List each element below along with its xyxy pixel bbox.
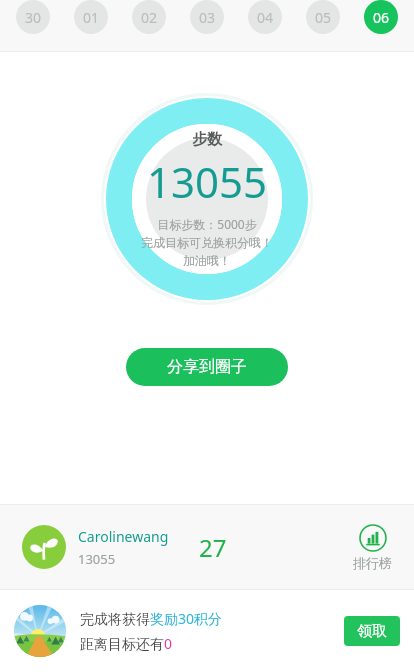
staticText: 分享到圈子 xyxy=(167,357,247,377)
other: 排行榜 xyxy=(359,524,387,552)
staticText: 目标步数：5000步 xyxy=(157,216,257,232)
staticText: 距离目标还有0 xyxy=(80,634,173,653)
staticText: 03 xyxy=(199,8,216,27)
staticText: 领取 xyxy=(357,622,387,641)
staticText: 30 xyxy=(25,8,42,27)
staticText: 完成将获得奖励30积分 xyxy=(80,609,223,628)
button[interactable]: 领取 xyxy=(344,616,400,646)
staticText: 步数 xyxy=(192,130,222,149)
staticText: 排行榜 xyxy=(353,555,392,571)
staticText: 13055 xyxy=(78,550,116,568)
staticText: 加油哦！ xyxy=(183,253,231,268)
button[interactable]: 02 xyxy=(132,0,166,34)
button[interactable]: 01 xyxy=(74,0,108,34)
staticText: Carolinewang xyxy=(78,527,169,546)
button[interactable]: 排行榜 xyxy=(353,524,392,571)
button[interactable]: 05 xyxy=(306,0,340,34)
staticText: 05 xyxy=(315,8,332,27)
staticText: 完成目标可兑换积分哦！ xyxy=(141,235,273,250)
button[interactable]: 30 xyxy=(16,0,50,34)
staticText: 01 xyxy=(83,8,100,27)
button[interactable]: 03 xyxy=(190,0,224,34)
staticText: 27 xyxy=(199,531,227,564)
staticText: 13055 xyxy=(147,153,268,210)
staticText: 06 xyxy=(373,8,390,27)
button[interactable]: 04 xyxy=(248,0,282,34)
button[interactable]: 06 xyxy=(364,0,398,34)
button[interactable]: 分享到圈子 xyxy=(126,348,288,386)
staticText: 04 xyxy=(257,8,274,27)
staticText: 02 xyxy=(141,8,158,27)
button[interactable]: Carolinewang xyxy=(0,505,414,589)
